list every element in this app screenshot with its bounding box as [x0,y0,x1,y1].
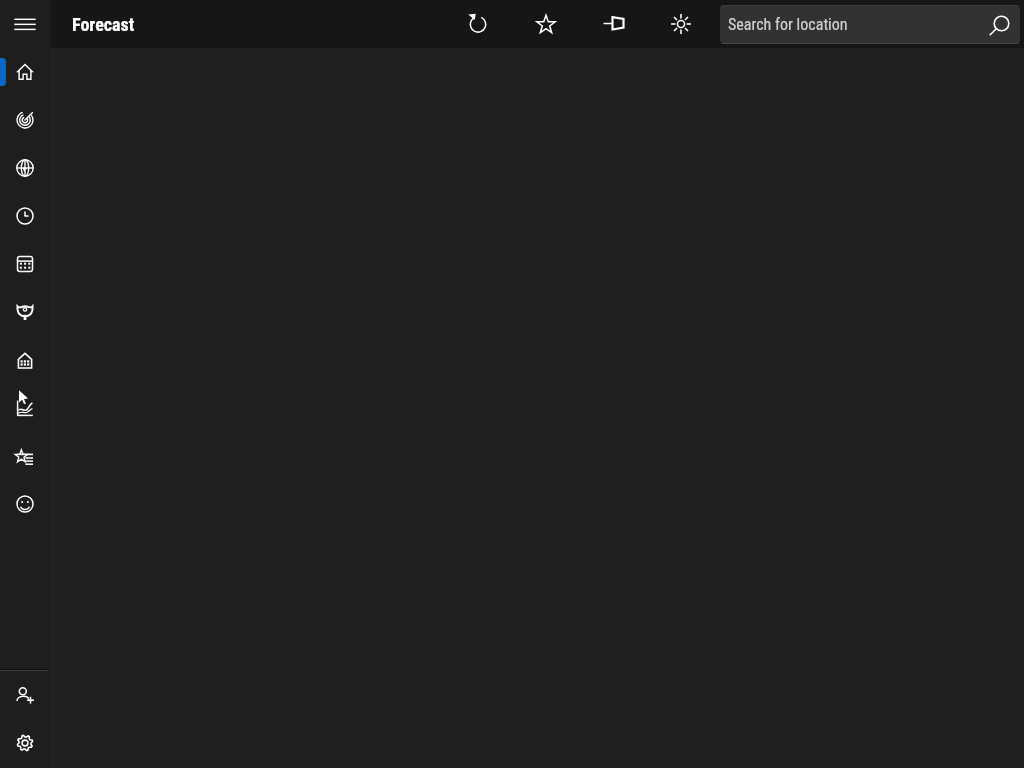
button[interactable]: Refresh [458,4,498,44]
button[interactable]: Monthly forecast [0,240,50,288]
button[interactable]: Settings [0,719,50,767]
button[interactable]: Navigation menu [0,0,50,48]
button[interactable]: Send feedback [0,480,50,528]
button[interactable]: Life index [0,336,50,384]
button[interactable]: Add to favorites [526,4,566,44]
button[interactable]: Hourly forecast [0,192,50,240]
button[interactable]: Favorites [0,432,50,480]
staticText: Forecast [72,14,135,35]
button[interactable]: Toggle theme [661,4,701,44]
button[interactable]: Search for location [720,5,1020,44]
staticText: Search for location [728,15,848,34]
button[interactable]: Add account [0,671,50,719]
button[interactable]: Pollen [0,288,50,336]
button[interactable]: Pin [594,4,634,44]
button[interactable]: Radar [0,96,50,144]
button[interactable]: Maps [0,144,50,192]
button[interactable]: Home [0,48,50,96]
button[interactable]: Historical weather [0,384,50,432]
